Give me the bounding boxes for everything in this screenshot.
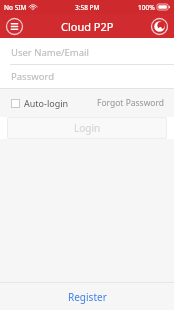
button[interactable]: Network status <box>150 17 169 36</box>
staticText: Register <box>68 290 107 304</box>
button[interactable]: User Name/Email <box>0 41 174 64</box>
button[interactable]: Forgot Password <box>97 97 165 109</box>
button[interactable]: Register <box>0 283 174 310</box>
button[interactable]: Auto-login <box>11 97 69 109</box>
staticText: 3:58 PM <box>75 3 100 12</box>
button[interactable]: Login <box>7 117 167 139</box>
staticText: Cloud P2P <box>61 19 114 34</box>
button[interactable]: Menu <box>5 17 24 36</box>
button[interactable]: Password <box>0 65 174 88</box>
staticText: Auto-login <box>24 97 69 109</box>
staticText: No SIM <box>4 3 27 12</box>
staticText: 100% <box>138 3 155 12</box>
staticText: User Name/Email <box>11 46 89 59</box>
staticText: Login <box>74 121 101 135</box>
staticText: Forgot Password <box>97 97 165 109</box>
staticText: Password <box>11 70 54 83</box>
